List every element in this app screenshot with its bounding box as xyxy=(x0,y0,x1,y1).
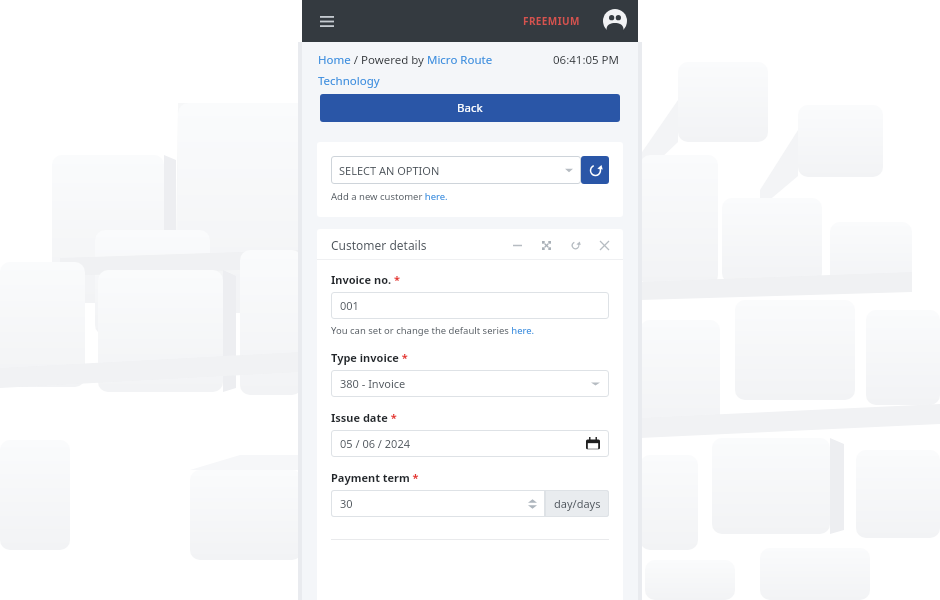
button[interactable]: 380 - Invoice xyxy=(331,370,609,397)
staticText: Back xyxy=(457,100,483,116)
other: Pick date xyxy=(586,437,600,451)
button[interactable]: Collapse xyxy=(510,238,524,252)
staticText: Payment term * xyxy=(331,470,419,485)
button[interactable]: Expand xyxy=(539,238,553,252)
staticText: Type invoice * xyxy=(331,350,408,365)
button[interactable]: Menu xyxy=(314,8,340,34)
staticText: 001 xyxy=(340,298,359,313)
button[interactable]: Account xyxy=(602,8,628,34)
staticText: Issue date * xyxy=(331,410,397,425)
button[interactable]: 05 / 06 / 2024 xyxy=(331,430,609,457)
staticText: Customer details xyxy=(331,237,427,253)
button[interactable]: Refresh customers xyxy=(581,156,609,184)
staticText: day/days xyxy=(554,496,601,511)
button[interactable]: Back xyxy=(320,94,620,122)
button[interactable]: Reload xyxy=(568,238,582,252)
staticText: 380 - Invoice xyxy=(340,376,591,391)
button[interactable]: Add a new customer here. xyxy=(331,190,448,203)
staticText: Home / Powered by Micro Route Technology xyxy=(318,52,533,89)
staticText: Invoice no. * xyxy=(331,272,400,287)
staticText: FREEMIUM xyxy=(523,14,580,28)
button[interactable]: 001 xyxy=(331,292,609,319)
button[interactable]: You can set or change the default series… xyxy=(331,324,535,337)
button[interactable]: Close xyxy=(597,238,611,252)
staticText: 05 / 06 / 2024 xyxy=(340,436,586,451)
staticText: 30 xyxy=(340,496,528,511)
staticText: 06:41:05 PM xyxy=(553,52,620,68)
button[interactable]: FREEMIUM xyxy=(519,14,584,28)
staticText: SELECT AN OPTION xyxy=(339,163,565,178)
button[interactable]: 30 xyxy=(331,490,545,517)
button[interactable]: SELECT AN OPTION xyxy=(331,156,581,184)
